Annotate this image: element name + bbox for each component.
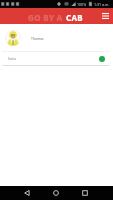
- staticText: 100%: [77, 2, 87, 7]
- button[interactable]: Thomas: [2, 25, 110, 51]
- staticText: 1:31 a.m.: [94, 2, 110, 7]
- staticText: CAB: [66, 12, 84, 23]
- button[interactable]: Home: [46, 186, 66, 200]
- staticText: GO BY A: [28, 12, 66, 23]
- staticText: Thomas: [31, 36, 44, 41]
- button[interactable]: Back: [17, 186, 37, 200]
- button[interactable]: Open navigation menu: [97, 8, 113, 24]
- staticText: Status: [8, 57, 17, 61]
- button[interactable]: Recent apps: [75, 186, 95, 200]
- button[interactable]: Status: [2, 52, 110, 65]
